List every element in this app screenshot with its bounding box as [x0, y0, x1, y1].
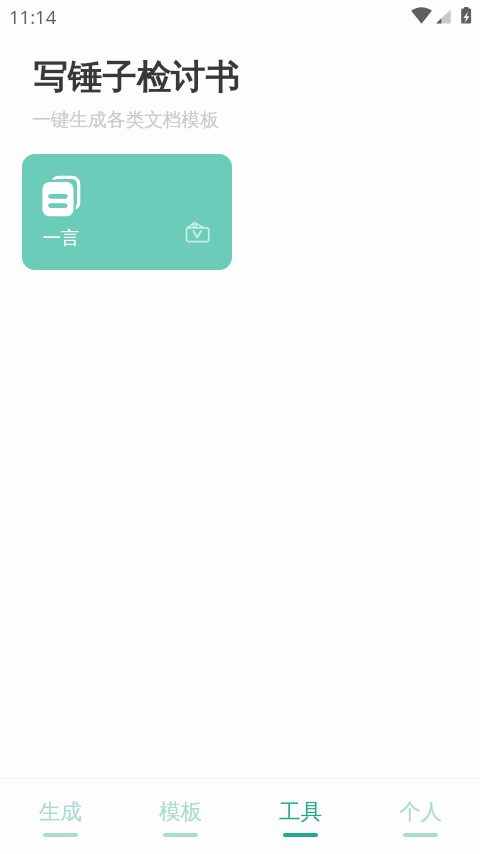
button[interactable]: Save to clipboard [179, 217, 213, 247]
staticText: 模板 [159, 798, 202, 825]
button[interactable]: 生成 [0, 779, 120, 854]
staticText: 一言 [43, 227, 79, 250]
button[interactable]: 个人 [360, 779, 480, 854]
staticText: 一键生成各类文档模板 [32, 108, 219, 132]
staticText: 工具 [279, 798, 322, 825]
button[interactable]: 一言 [22, 154, 232, 270]
staticText: 生成 [39, 798, 82, 825]
button[interactable]: 工具 [240, 779, 360, 854]
button[interactable]: 模板 [120, 779, 240, 854]
staticText: 个人 [399, 798, 442, 825]
staticText: 11:14 [9, 4, 57, 29]
staticText: 写锤子检讨书 [33, 56, 240, 99]
